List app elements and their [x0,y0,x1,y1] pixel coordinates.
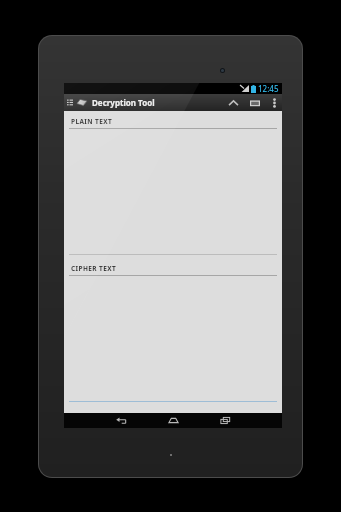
button[interactable]: Navigation drawer [64,94,76,111]
staticText: PLAIN TEXT [71,117,113,126]
button[interactable]: More options [266,94,282,111]
button[interactable]: Home [147,413,199,428]
staticText: Decryption Tool [92,97,155,108]
staticText: 12:45 [258,83,279,94]
button[interactable]: Back [95,413,147,428]
button[interactable]: Collapse [222,94,244,111]
button[interactable]: Recent apps [199,413,251,428]
staticText: CIPHER TEXT [71,264,117,273]
button[interactable]: Open file [244,94,266,111]
